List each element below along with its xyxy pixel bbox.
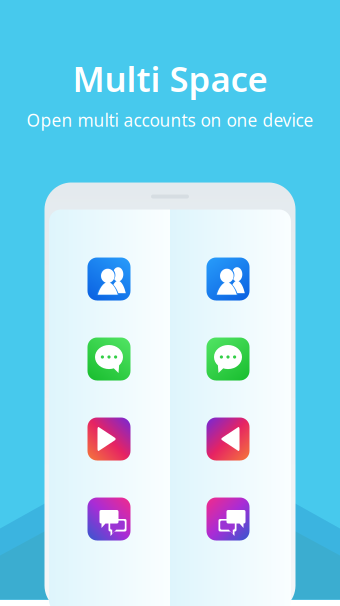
staticText: Multi Space xyxy=(72,55,267,101)
staticText: Open multi accounts on one device xyxy=(26,108,313,131)
